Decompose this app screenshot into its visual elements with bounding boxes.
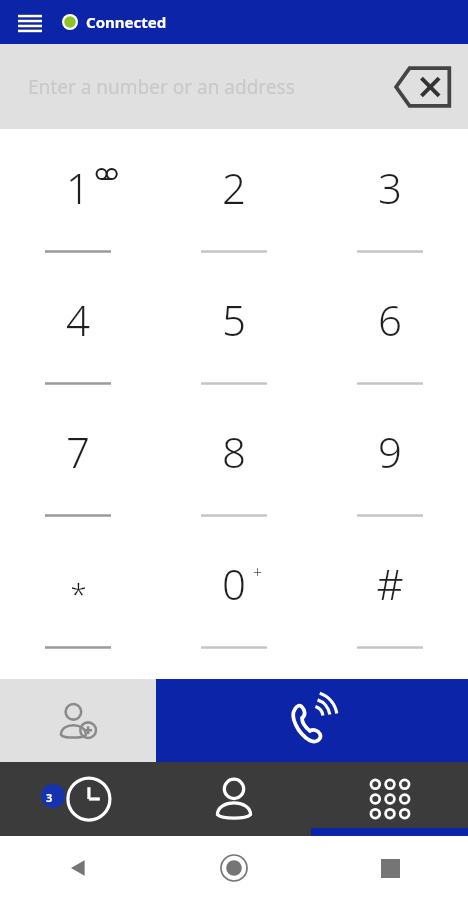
button[interactable]: Recent apps <box>312 836 468 900</box>
button[interactable]: Recents <box>0 762 156 836</box>
button[interactable]: Contacts <box>156 762 312 836</box>
staticText: 1 <box>66 159 90 216</box>
button[interactable]: # <box>312 547 468 679</box>
button[interactable]: 9 <box>312 415 468 547</box>
staticText: # <box>376 555 404 612</box>
button[interactable]: 5 <box>156 283 312 415</box>
button[interactable]: 1 <box>0 151 156 283</box>
button[interactable]: 4 <box>0 283 156 415</box>
button[interactable]: 6 <box>312 283 468 415</box>
button[interactable]: Home <box>156 836 312 900</box>
button[interactable]: Call <box>156 679 468 762</box>
button[interactable]: * <box>0 547 156 679</box>
button[interactable]: Add contact <box>0 679 156 762</box>
staticText: 3 <box>378 159 402 216</box>
button[interactable]: 0 <box>156 547 312 679</box>
staticText: 5 <box>222 291 246 348</box>
staticText: + <box>253 561 263 583</box>
staticText: 7 <box>66 423 90 480</box>
staticText: 9 <box>378 423 402 480</box>
staticText: * <box>70 573 87 614</box>
button[interactable]: Keypad <box>312 762 468 836</box>
button[interactable]: 7 <box>0 415 156 547</box>
staticText: 3 <box>46 790 53 805</box>
staticText: Connected <box>86 12 167 32</box>
staticText: 0 <box>222 555 246 612</box>
button[interactable]: Back <box>0 836 156 900</box>
staticText: Enter a number or an address <box>28 74 295 100</box>
button[interactable]: Enter a number or an address <box>28 44 378 129</box>
button[interactable]: Menu <box>12 4 48 40</box>
staticText: 6 <box>378 291 402 348</box>
button[interactable]: 8 <box>156 415 312 547</box>
staticText: 8 <box>222 423 246 480</box>
button[interactable]: Backspace <box>392 63 454 111</box>
button[interactable]: 2 <box>156 151 312 283</box>
button[interactable]: 3 <box>312 151 468 283</box>
staticText: 4 <box>66 291 90 348</box>
staticText: 2 <box>222 159 246 216</box>
